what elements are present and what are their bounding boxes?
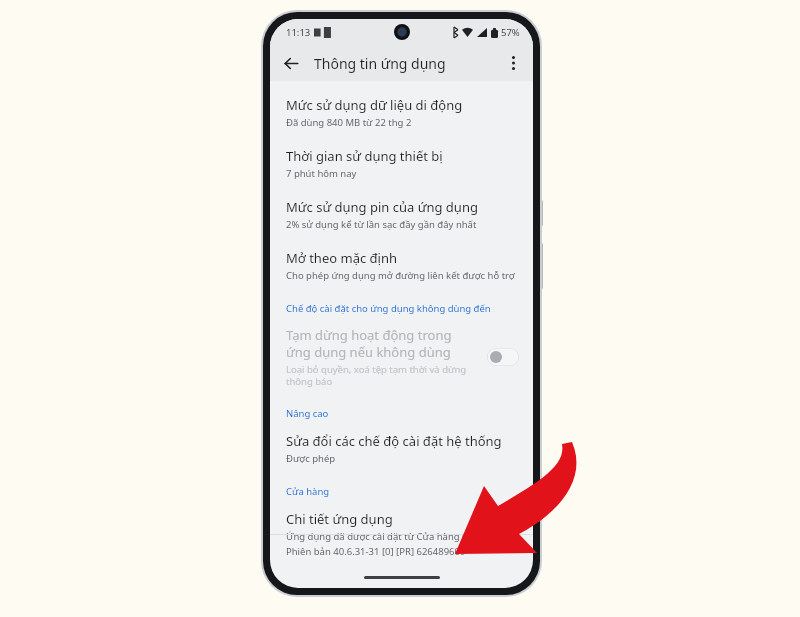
staticText: 11:13: [286, 26, 311, 39]
staticText: Tạm dừng hoạt động trong ứng dụng nếu kh…: [286, 326, 477, 361]
staticText: 2% sử dụng kể từ lần sạc đầy gần đây nhấ…: [286, 218, 477, 231]
button[interactable]: Thời gian sử dụng thiết bị: [270, 138, 533, 189]
staticText: 57%: [501, 26, 520, 39]
button[interactable]: More options: [498, 48, 528, 78]
button[interactable]: Chi tiết ứng dụng: [270, 501, 533, 552]
staticText: Cửa hàng: [286, 485, 330, 498]
staticText: 7 phút hôm nay: [286, 167, 357, 180]
button[interactable]: Tạm dừng hoạt động trong ứng dụng nếu kh…: [270, 318, 533, 396]
staticText: Thời gian sử dụng thiết bị: [286, 147, 443, 165]
staticText: Được phép: [286, 452, 336, 465]
button[interactable]: Mở theo mặc định: [270, 240, 533, 291]
button[interactable]: Sửa đổi các chế độ cài đặt hệ thống: [270, 423, 533, 474]
staticText: Nâng cao: [286, 407, 329, 420]
staticText: Mức sử dụng dữ liệu di động: [286, 96, 463, 114]
staticText: Phiên bản 40.6.31-31 [0] [PR] 626489609: [286, 545, 466, 558]
staticText: Ứng dụng đã được cài đặt từ Cửa hàng Goo…: [286, 530, 495, 543]
staticText: Chi tiết ứng dụng: [286, 510, 393, 528]
staticText: Sửa đổi các chế độ cài đặt hệ thống: [286, 432, 502, 450]
staticText: Đã dùng 840 MB từ 22 thg 2: [286, 116, 412, 129]
button[interactable]: Mức sử dụng dữ liệu di động: [270, 87, 533, 138]
staticText: Mức sử dụng pin của ứng dụng: [286, 198, 478, 216]
button[interactable]: Mức sử dụng pin của ứng dụng: [270, 189, 533, 240]
staticText: Cho phép ứng dụng mở đường liên kết được…: [286, 269, 515, 282]
staticText: Mở theo mặc định: [286, 249, 397, 267]
staticText: Loại bỏ quyền, xoá tệp tạm thời và dừng …: [286, 363, 477, 388]
staticText: Thông tin ứng dụng: [314, 54, 446, 73]
staticText: Chế độ cài đặt cho ứng dụng không dùng đ…: [286, 302, 491, 315]
button[interactable]: Back: [276, 48, 306, 78]
